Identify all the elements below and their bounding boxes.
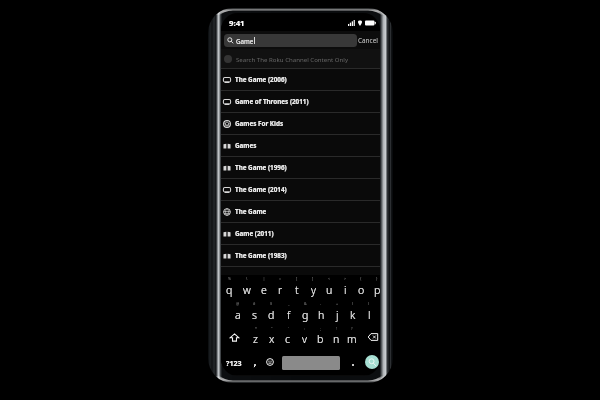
staticText: b: [317, 332, 324, 346]
button[interactable]: Emoji: [262, 349, 277, 375]
staticText: -: [320, 301, 322, 306]
button[interactable]: ;: [312, 325, 328, 349]
staticText: e: [261, 283, 267, 297]
button[interactable]: [247, 349, 262, 375]
button[interactable]: $: [263, 300, 280, 325]
button[interactable]: (: [345, 300, 361, 325]
staticText: The Game (2006): [235, 75, 287, 84]
staticText: c: [285, 332, 291, 346]
staticText: The Game (2014): [235, 185, 287, 194]
button[interactable]: _: [280, 300, 297, 325]
button[interactable]: Shift: [221, 325, 247, 349]
button[interactable]: %: [221, 275, 238, 300]
staticText: a: [235, 308, 241, 322]
staticText: =: [279, 276, 282, 281]
staticText: m: [347, 332, 357, 346]
staticText: g: [302, 308, 309, 322]
button[interactable]: =: [272, 275, 289, 300]
staticText: o: [358, 283, 365, 297]
button[interactable]: Game (2011): [221, 223, 380, 244]
button[interactable]: *: [247, 325, 264, 349]
button[interactable]: #: [246, 300, 263, 325]
button[interactable]: The Game: [221, 201, 380, 222]
staticText: &: [304, 301, 307, 306]
staticText: #: [253, 301, 256, 306]
button[interactable]: Search The Roku Channel Content Only: [221, 49, 380, 68]
staticText: >: [344, 276, 347, 281]
staticText: k: [350, 308, 356, 322]
staticText: 9:41: [229, 18, 245, 29]
button[interactable]: Game: [224, 34, 357, 47]
staticText: Game: [236, 37, 254, 45]
button[interactable]: Cancel: [356, 31, 380, 49]
button[interactable]: Games For Kids: [221, 113, 380, 134]
button[interactable]: Games: [221, 135, 380, 156]
button[interactable]: ': [280, 325, 296, 349]
staticText: [: [296, 276, 298, 281]
button[interactable]: |: [255, 275, 272, 300]
staticText: r: [278, 283, 283, 297]
staticText: q: [226, 283, 233, 297]
button[interactable]: [: [289, 275, 305, 300]
staticText: ': [288, 326, 289, 331]
button[interactable]: +: [329, 300, 345, 325]
staticText: l: [368, 308, 371, 322]
button[interactable]: @: [229, 300, 246, 325]
staticText: Search The Roku Channel Content Only: [236, 55, 348, 63]
staticText: @: [236, 301, 240, 306]
staticText: y: [311, 283, 316, 297]
button[interactable]: The Game (2014): [221, 179, 380, 200]
staticText: ;: [320, 326, 321, 331]
button[interactable]: }: [369, 275, 380, 300]
button[interactable]: Game of Thrones (2011): [221, 91, 380, 112]
staticText: Cancel: [358, 36, 378, 45]
staticText: ]: [312, 276, 314, 281]
staticText: p: [374, 283, 380, 297]
staticText: d: [268, 308, 275, 322]
button[interactable]: \: [238, 275, 255, 300]
button[interactable]: ?: [344, 325, 360, 349]
button[interactable]: &: [297, 300, 313, 325]
staticText: ?: [351, 326, 353, 331]
button[interactable]: Search: [365, 355, 379, 369]
button[interactable]: Space: [282, 356, 340, 370]
staticText: ): [368, 301, 370, 306]
staticText: n: [333, 332, 340, 346]
staticText: Game (2011): [235, 229, 274, 238]
staticText: j: [336, 308, 339, 322]
staticText: v: [302, 332, 307, 346]
button[interactable]: Backspace: [360, 325, 380, 349]
button[interactable]: :: [296, 325, 312, 349]
button[interactable]: ): [361, 300, 377, 325]
button[interactable]: The Game (2006): [221, 69, 380, 90]
staticText: ": [271, 326, 273, 331]
staticText: |: [263, 276, 265, 281]
staticText: :: [304, 326, 305, 331]
button[interactable]: ": [264, 325, 280, 349]
staticText: $: [270, 301, 273, 306]
button[interactable]: The Game (1996): [221, 157, 380, 178]
button[interactable]: ]: [305, 275, 321, 300]
staticText: u: [326, 283, 333, 297]
staticText: s: [252, 308, 257, 322]
button[interactable]: [345, 349, 360, 375]
staticText: Games For Kids: [235, 119, 284, 128]
staticText: z: [253, 332, 258, 346]
staticText: x: [269, 332, 275, 346]
staticText: !: [336, 326, 337, 331]
button[interactable]: >: [337, 275, 353, 300]
staticText: The Game: [235, 207, 267, 216]
staticText: %: [228, 276, 231, 281]
button[interactable]: -: [313, 300, 329, 325]
staticText: \: [246, 276, 248, 281]
staticText: +: [336, 301, 339, 306]
button[interactable]: The Game (1983): [221, 245, 380, 266]
button[interactable]: !: [328, 325, 344, 349]
staticText: Game of Thrones (2011): [235, 97, 309, 106]
staticText: The Game (1996): [235, 163, 287, 172]
button[interactable]: <: [321, 275, 337, 300]
button[interactable]: {: [353, 275, 369, 300]
button[interactable]: ?123: [221, 349, 246, 375]
staticText: f: [287, 308, 291, 322]
staticText: i: [344, 283, 347, 297]
